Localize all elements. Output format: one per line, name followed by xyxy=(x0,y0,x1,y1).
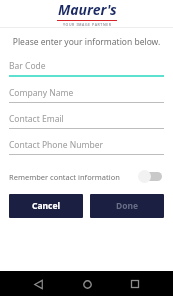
staticText: Contact Email xyxy=(9,113,64,125)
staticText: Remember contact information xyxy=(9,172,120,182)
button[interactable]: Done xyxy=(90,194,164,218)
button[interactable]: Recent apps xyxy=(124,273,146,295)
button[interactable]: Company Name xyxy=(0,87,173,103)
staticText: Cancel xyxy=(32,200,61,212)
button[interactable]: Back xyxy=(27,273,49,295)
staticText: Please enter your information below. xyxy=(0,36,173,48)
staticText: Bar Code xyxy=(9,60,46,72)
staticText: Contact Phone Number xyxy=(9,139,103,151)
staticText: Done xyxy=(116,200,139,212)
button[interactable]: Remember contact information xyxy=(0,167,173,186)
button[interactable]: Cancel xyxy=(9,194,83,218)
button[interactable]: Bar Code xyxy=(0,60,173,77)
staticText: YOUR IMAGE PARTNER xyxy=(63,22,112,27)
button[interactable]: Home xyxy=(76,273,98,295)
staticText: Maurer's xyxy=(58,0,117,19)
button[interactable]: Contact Email xyxy=(0,113,173,129)
button[interactable]: Contact Phone Number xyxy=(0,139,173,155)
button[interactable]: Remember contact information toggle xyxy=(138,170,164,183)
staticText: Company Name xyxy=(9,87,74,99)
